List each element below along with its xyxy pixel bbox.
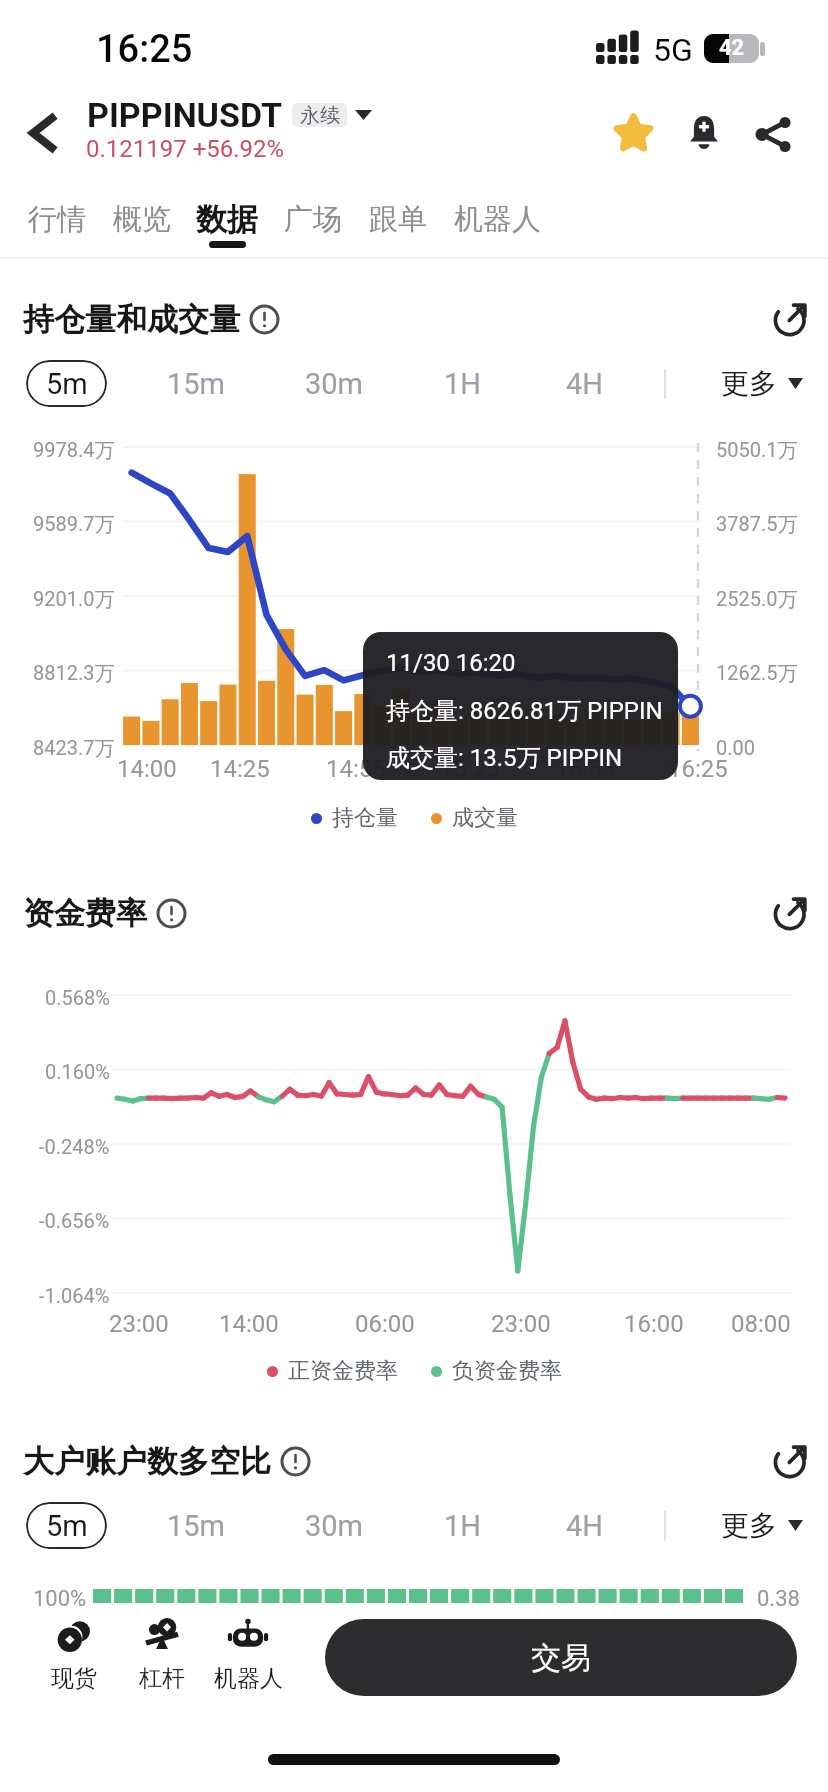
staticText: 现货 <box>51 1664 97 1693</box>
staticText: 9589.7万 <box>33 512 115 537</box>
staticText: 14:25 <box>210 755 270 783</box>
staticText: 8812.3万 <box>33 661 115 686</box>
staticText: 0.568% <box>45 986 110 1009</box>
button[interactable]: 机器人 <box>204 1617 292 1693</box>
button[interactable]: 行情 <box>15 190 99 246</box>
staticText: 06:00 <box>355 1310 415 1338</box>
button[interactable]: 30m <box>279 360 389 407</box>
button[interactable]: Favorite <box>609 108 658 157</box>
staticText: 大户账户数多空比 <box>23 1442 271 1481</box>
staticText: 15m <box>167 367 226 401</box>
staticText: 负资金费率 <box>452 1357 562 1385</box>
button[interactable]: 30m <box>279 1502 389 1549</box>
button[interactable]: 5m <box>26 1502 107 1549</box>
staticText: PIPPINUSDT <box>87 95 283 135</box>
button[interactable]: Price alert <box>680 108 728 156</box>
staticText: 15m <box>167 1509 226 1543</box>
staticText: 持仓量: 8626.81万 PIPPIN <box>386 696 663 726</box>
staticText: 概览 <box>113 201 171 238</box>
staticText: 成交量 <box>452 804 518 832</box>
button[interactable]: 概览 <box>100 190 184 246</box>
staticText: 5m <box>46 367 88 401</box>
button[interactable]: 15m <box>141 360 251 407</box>
staticText: 23:00 <box>109 1310 169 1338</box>
staticText: 14:00 <box>219 1310 279 1338</box>
staticText: 3787.5万 <box>716 512 798 537</box>
staticText: 5G <box>653 31 693 69</box>
staticText: 行情 <box>28 201 86 238</box>
staticText: 9201.0万 <box>33 587 115 612</box>
button[interactable]: 4H <box>529 360 639 407</box>
staticText: 0.121197 +56.92% <box>86 135 285 163</box>
staticText: 1H <box>444 367 481 401</box>
staticText: 15:25 <box>440 755 500 783</box>
staticText: 交易 <box>531 1639 591 1677</box>
button[interactable]: 更多 <box>717 1502 807 1549</box>
staticText: 1H <box>444 1509 481 1543</box>
button[interactable]: 1H <box>407 360 517 407</box>
staticText: 机器人 <box>214 1664 283 1693</box>
staticText: 杠杆 <box>139 1664 185 1693</box>
staticText: 1262.5万 <box>716 661 798 686</box>
staticText: 11/30 16:20 <box>386 649 516 677</box>
staticText: 持仓量和成交量 <box>23 300 240 339</box>
button[interactable]: 交易 <box>325 1619 797 1696</box>
staticText: 16:25 <box>96 27 193 72</box>
staticText: 数据 <box>196 200 258 239</box>
button[interactable]: 5m <box>26 360 107 407</box>
button[interactable]: 广场 <box>271 190 355 246</box>
staticText: 16:00 <box>624 1310 684 1338</box>
staticText: 机器人 <box>454 201 541 238</box>
staticText: 16:25 <box>668 755 728 783</box>
staticText: 正资金费率 <box>288 1357 398 1385</box>
staticText: 30m <box>305 367 364 401</box>
button[interactable]: 数据 <box>185 190 269 246</box>
button[interactable]: Open full chart <box>770 890 812 932</box>
staticText: 100% <box>33 1586 87 1612</box>
staticText: 9978.4万 <box>33 438 115 463</box>
staticText: 0.160% <box>45 1060 110 1083</box>
staticText: 8423.7万 <box>33 736 115 761</box>
staticText: 14:00 <box>117 755 177 783</box>
staticText: 30m <box>305 1509 364 1543</box>
button[interactable]: 杠杆 <box>118 1617 206 1693</box>
staticText: 跟单 <box>369 201 427 238</box>
button[interactable]: 4H <box>529 1502 639 1549</box>
button[interactable]: Open full chart <box>770 1438 812 1480</box>
button[interactable]: Open full chart <box>770 296 812 338</box>
staticText: 15:55 <box>555 755 615 783</box>
staticText: 42 <box>719 35 745 61</box>
button[interactable]: Back <box>20 106 74 160</box>
staticText: 4H <box>566 367 603 401</box>
staticText: 14:55 <box>326 755 386 783</box>
staticText: 23:00 <box>491 1310 551 1338</box>
button[interactable]: 跟单 <box>356 190 440 246</box>
staticText: -1.064% <box>39 1284 110 1307</box>
button[interactable]: Share <box>750 110 798 158</box>
staticText: -0.656% <box>39 1209 110 1232</box>
staticText: 0.00 <box>716 736 755 759</box>
staticText: -0.248% <box>39 1135 110 1158</box>
button[interactable]: 1H <box>407 1502 517 1549</box>
staticText: 4H <box>566 1509 603 1543</box>
staticText: 5m <box>46 1509 88 1543</box>
staticText: 永续 <box>300 103 340 127</box>
staticText: 0.38 <box>757 1586 800 1612</box>
button[interactable]: 现货 <box>30 1617 118 1693</box>
staticText: 5050.1万 <box>716 438 798 463</box>
staticText: 2525.0万 <box>716 587 798 612</box>
staticText: 08:00 <box>731 1310 791 1338</box>
staticText: 广场 <box>284 201 342 238</box>
staticText: 持仓量 <box>332 804 398 832</box>
button[interactable]: 更多 <box>717 360 807 407</box>
staticText: 成交量: 13.5万 PIPPIN <box>386 743 623 773</box>
button[interactable]: 机器人 <box>441 190 553 246</box>
button[interactable]: 15m <box>141 1502 251 1549</box>
staticText: 资金费率 <box>23 894 147 933</box>
staticText: 更多 <box>721 366 777 401</box>
staticText: 更多 <box>721 1508 777 1543</box>
